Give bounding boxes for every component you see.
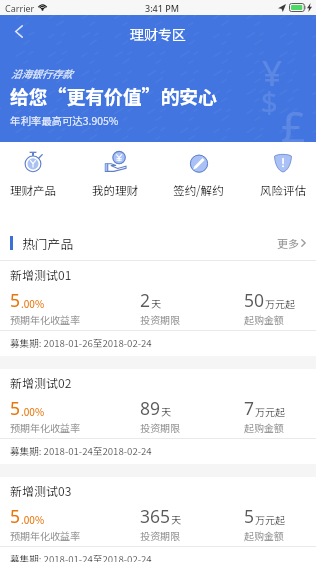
staticText: 89 — [140, 396, 161, 420]
staticText: 起购金额 — [244, 528, 284, 542]
button[interactable]: 我的理财 — [92, 142, 138, 199]
staticText: 投资期限 — [140, 420, 180, 434]
staticText: 5 — [10, 396, 21, 420]
staticText: 万元起 — [255, 404, 285, 418]
staticText: $ — [261, 82, 278, 121]
staticText: 热门产品 — [22, 234, 74, 253]
button[interactable] — [0, 369, 316, 464]
staticText: 起购金额 — [244, 420, 284, 434]
staticText: 5 — [244, 504, 255, 528]
staticText: 签约/解约 — [173, 182, 224, 199]
staticText: 3:41 PM — [145, 2, 179, 14]
staticText: .00% — [21, 512, 45, 526]
staticText: .00% — [21, 404, 45, 418]
staticText: 7 — [244, 396, 255, 420]
button[interactable]: 理财产品 — [10, 142, 56, 199]
staticText: 给您“更有价值”的安心 — [10, 82, 217, 109]
button[interactable]: 签约/解约 — [173, 142, 224, 199]
staticText: 募集期: 2018-01-24至2018-02-24 — [10, 552, 152, 562]
staticText: 2 — [140, 288, 151, 312]
button[interactable] — [0, 261, 316, 356]
staticText: 5 — [10, 288, 21, 312]
staticText: 365 — [140, 504, 171, 528]
button[interactable]: 更多 — [267, 227, 316, 259]
staticText: 预期年化收益率 — [10, 420, 80, 434]
button[interactable]: 风险评估 — [260, 142, 306, 199]
staticText: .00% — [21, 296, 45, 310]
button[interactable]: Back — [5, 20, 33, 43]
staticText: Carrier — [5, 2, 35, 14]
staticText: ¥ — [262, 49, 283, 97]
staticText: 募集期: 2018-01-26至2018-02-24 — [10, 336, 152, 350]
button[interactable] — [0, 477, 316, 562]
staticText: 我的理财 — [92, 182, 138, 199]
staticText: 投资期限 — [140, 312, 180, 326]
staticText: 天 — [151, 296, 161, 310]
staticText: 理财专区 — [130, 24, 186, 44]
staticText: 天 — [161, 404, 171, 418]
staticText: 预期年化收益率 — [10, 312, 80, 326]
staticText: 新增测试02 — [10, 374, 72, 391]
staticText: 更多 — [277, 235, 299, 251]
staticText: 天 — [171, 512, 181, 526]
staticText: £ — [281, 97, 306, 156]
staticText: 募集期: 2018-01-24至2018-02-24 — [10, 444, 152, 458]
staticText: 50 — [244, 288, 265, 312]
staticText: 沿海银行存款 — [11, 66, 73, 81]
staticText: 起购金额 — [244, 312, 284, 326]
staticText: 新增测试01 — [10, 266, 72, 283]
staticText: 万元起 — [265, 296, 295, 310]
staticText: 理财产品 — [10, 182, 56, 199]
staticText: 万元起 — [255, 512, 285, 526]
staticText: 新增测试03 — [10, 482, 72, 499]
staticText: 风险评估 — [260, 182, 306, 199]
staticText: 预期年化收益率 — [10, 528, 80, 542]
staticText: 5 — [10, 504, 21, 528]
staticText: 年利率最高可达3.905% — [10, 113, 119, 128]
staticText: 投资期限 — [140, 528, 180, 542]
